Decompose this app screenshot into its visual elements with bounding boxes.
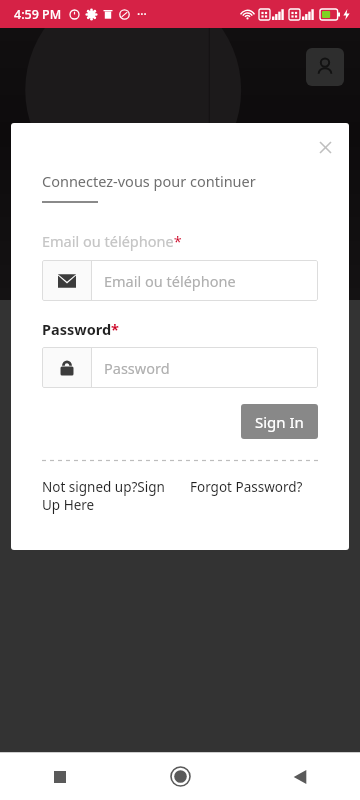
staticText: Up Here (42, 496, 95, 514)
staticText: Password* (42, 319, 119, 339)
button[interactable]: Not signed up?Sign (42, 478, 170, 514)
button[interactable]: Home (120, 753, 240, 800)
staticText: Connectez-vous pour continuer (42, 171, 256, 191)
button[interactable]: Account (306, 48, 344, 86)
button[interactable]: Back (240, 753, 360, 800)
staticText: Email ou téléphone* (42, 231, 182, 251)
staticText: Not signed up?Sign (42, 478, 165, 496)
staticText: 4:59 PM (14, 6, 62, 23)
button[interactable]: Email ou téléphone (42, 260, 318, 301)
button[interactable]: Sign In (241, 404, 318, 439)
button[interactable]: Password (42, 347, 318, 388)
button[interactable]: Close (311, 133, 339, 161)
staticText: Password (104, 358, 170, 378)
staticText: ··· (137, 6, 147, 22)
button[interactable]: Forgot Password? (190, 478, 303, 496)
staticText: Forgot Password? (190, 478, 303, 496)
staticText: Email ou téléphone (104, 271, 236, 291)
staticText: Sign In (255, 412, 304, 432)
button[interactable]: Recents (0, 753, 120, 800)
